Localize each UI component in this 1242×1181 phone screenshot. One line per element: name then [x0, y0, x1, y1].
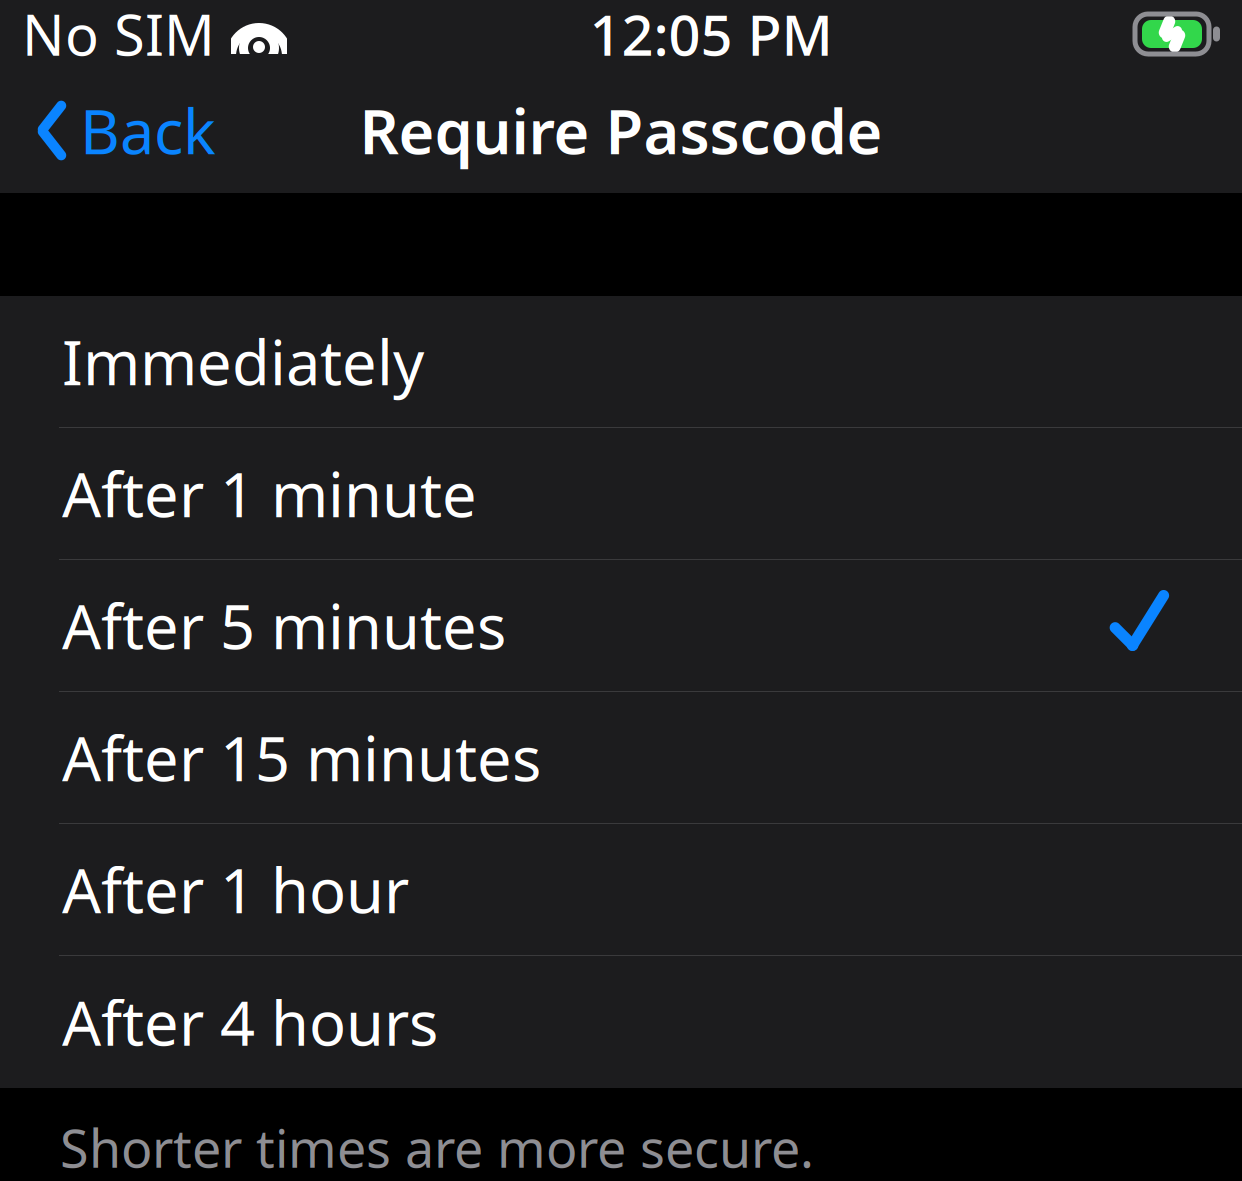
button[interactable]: After 1 hour	[0, 824, 1242, 956]
staticText: Immediately	[62, 321, 424, 402]
button[interactable]: Back	[0, 68, 240, 193]
staticText: Require Passcode	[359, 90, 882, 171]
staticText: After 4 hours	[62, 981, 438, 1063]
staticText: After 1 hour	[62, 849, 409, 930]
staticText: After 5 minutes	[62, 585, 506, 666]
staticText: After 1 minute	[62, 453, 477, 534]
button[interactable]: After 4 hours	[0, 956, 1242, 1088]
staticText: Back	[80, 90, 216, 171]
button[interactable]: After 5 minutes	[0, 560, 1242, 692]
staticText: No SIM	[22, 0, 215, 71]
button[interactable]: After 1 minute	[0, 428, 1242, 560]
button[interactable]: After 15 minutes	[0, 692, 1242, 824]
staticText: Shorter times are more secure.	[60, 1113, 814, 1181]
button[interactable]: Immediately	[0, 296, 1242, 428]
staticText: 12:05 PM	[589, 0, 832, 71]
staticText: After 15 minutes	[62, 717, 541, 798]
